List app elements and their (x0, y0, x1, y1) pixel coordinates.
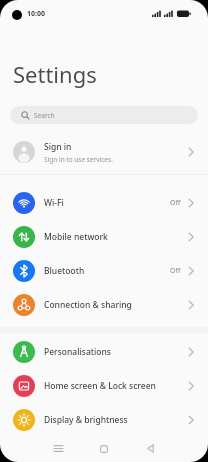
button[interactable]: Display & brightness (0, 403, 208, 437)
button[interactable]: Home screen & Lock screen (0, 369, 208, 403)
staticText: Sign in to use services. (44, 155, 113, 164)
button[interactable]: Sign in (0, 130, 208, 174)
staticText: Search (34, 111, 55, 120)
button[interactable]: Personalisations (0, 335, 208, 369)
staticText: Home screen & Lock screen (44, 380, 156, 392)
button[interactable] (127, 435, 173, 462)
staticText: Sign in (44, 141, 72, 153)
staticText: Bluetooth (44, 265, 85, 277)
button[interactable]: Search (10, 106, 198, 124)
staticText: Connection & sharing (44, 299, 132, 311)
button[interactable]: Mobile network (0, 220, 208, 254)
button[interactable] (81, 435, 127, 462)
button[interactable]: Connection & sharing (0, 288, 208, 322)
button[interactable]: Wi-Fi (0, 186, 208, 220)
staticText: Personalisations (44, 346, 111, 358)
staticText: Off (170, 198, 181, 208)
staticText: 10:00 (27, 9, 45, 19)
staticText: Display & brightness (44, 414, 128, 426)
staticText: Off (170, 266, 181, 276)
staticText: Wi-Fi (44, 197, 64, 209)
button[interactable]: Bluetooth (0, 254, 208, 288)
staticText: Mobile network (44, 231, 108, 243)
staticText: Settings (13, 59, 97, 89)
button[interactable] (35, 435, 81, 462)
